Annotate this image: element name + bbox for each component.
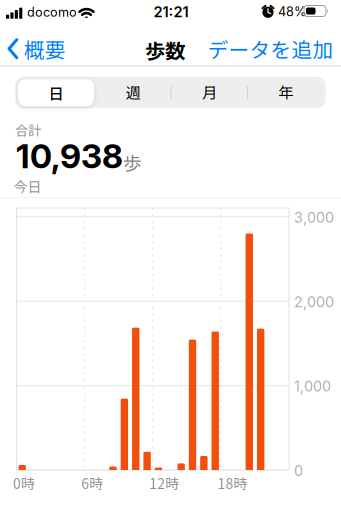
staticText: 年 bbox=[279, 81, 294, 103]
button[interactable]: 週 bbox=[95, 78, 171, 105]
staticText: 21:21 bbox=[153, 3, 188, 21]
staticText: 48% bbox=[278, 4, 306, 19]
staticText: 0 bbox=[294, 462, 303, 479]
staticText: 6時 bbox=[81, 473, 103, 493]
staticText: docomo bbox=[27, 4, 77, 20]
staticText: 3,000 bbox=[294, 209, 334, 226]
staticText: 合計 bbox=[15, 120, 41, 139]
staticText: 18時 bbox=[217, 473, 247, 493]
staticText: 0時 bbox=[13, 473, 35, 493]
staticText: データを追加 bbox=[207, 34, 333, 64]
button[interactable]: データを追加 bbox=[207, 34, 333, 64]
staticText: 今日 bbox=[13, 176, 41, 196]
staticText: 10,938 bbox=[16, 136, 123, 176]
button[interactable]: 年 bbox=[248, 78, 324, 105]
staticText: 日 bbox=[48, 82, 63, 104]
staticText: 概要 bbox=[24, 34, 66, 64]
staticText: 1,000 bbox=[294, 378, 331, 395]
button[interactable]: 日 bbox=[18, 79, 94, 106]
staticText: 2,000 bbox=[294, 293, 334, 311]
button[interactable]: 概要 bbox=[7, 34, 66, 64]
staticText: 12時 bbox=[149, 473, 179, 493]
staticText: 歩 bbox=[123, 149, 142, 176]
staticText: 月 bbox=[202, 81, 217, 103]
staticText: 週 bbox=[125, 81, 140, 103]
staticText: 歩数 bbox=[145, 35, 185, 64]
button[interactable]: 月 bbox=[171, 78, 247, 105]
